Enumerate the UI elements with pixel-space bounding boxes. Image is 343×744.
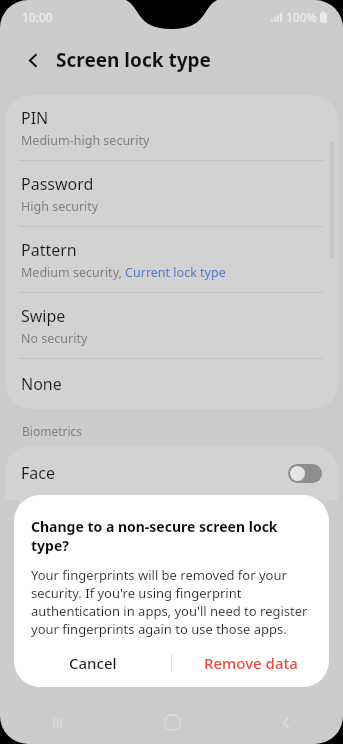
staticText: Medium security, Current lock type xyxy=(21,264,226,281)
staticText: Pattern xyxy=(21,239,77,261)
staticText: Cancel xyxy=(69,653,117,673)
staticText: None xyxy=(21,373,62,395)
staticText: Medium-high security xyxy=(21,132,150,149)
button[interactable]: Back xyxy=(229,700,343,744)
button[interactable]: None xyxy=(5,359,338,409)
staticText: 10:00 xyxy=(22,9,53,25)
button[interactable]: Swipe xyxy=(5,293,338,358)
staticText: Change to a non-secure screen lock type? xyxy=(31,517,315,555)
staticText: No security xyxy=(21,330,88,347)
button[interactable]: Pattern xyxy=(5,227,338,292)
button[interactable]: Back xyxy=(16,43,50,77)
staticText: Face xyxy=(21,462,55,484)
staticText: Biometrics xyxy=(22,423,83,439)
button[interactable]: PIN xyxy=(5,95,338,160)
staticText: Your fingerprints will be removed for yo… xyxy=(31,566,316,638)
staticText: Swipe xyxy=(21,305,66,327)
staticText: PIN xyxy=(21,107,49,129)
staticText: High security xyxy=(21,198,99,215)
button[interactable]: Face xyxy=(5,446,338,500)
staticText: Password xyxy=(21,173,94,195)
button[interactable]: Recent apps xyxy=(0,700,115,744)
staticText: Screen lock type xyxy=(56,47,211,73)
button[interactable]: Password xyxy=(5,161,338,226)
button[interactable]: Remove data xyxy=(172,638,329,687)
button[interactable]: Face toggle xyxy=(288,464,322,483)
staticText: Remove data xyxy=(204,653,298,673)
button[interactable]: Cancel xyxy=(14,638,171,687)
staticText: 100% xyxy=(286,9,317,25)
